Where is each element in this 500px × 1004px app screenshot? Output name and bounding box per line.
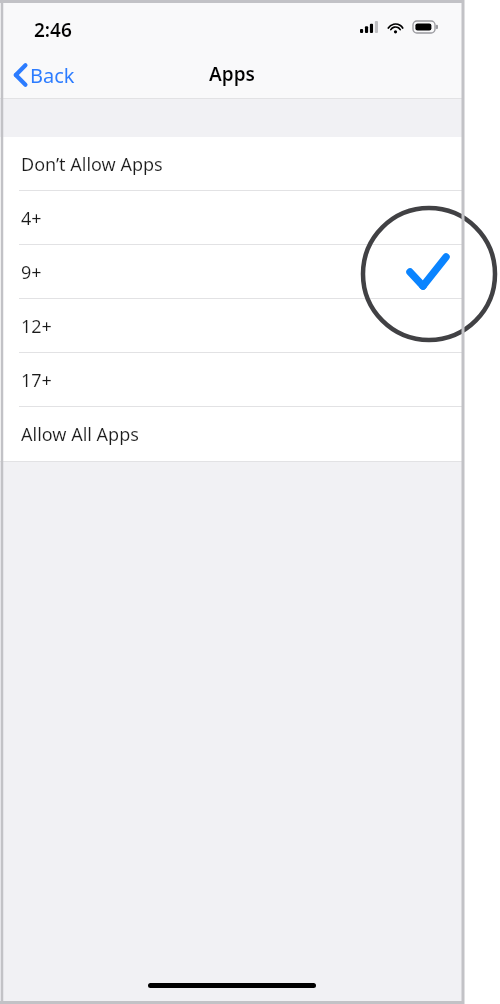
button[interactable]: Allow All Apps xyxy=(0,407,464,461)
button[interactable]: 17+ xyxy=(0,353,464,407)
other: Selected 9+ xyxy=(0,0,500,1004)
staticText: 12+ xyxy=(21,314,52,339)
button[interactable]: 9+ xyxy=(0,245,464,299)
staticText: 17+ xyxy=(21,368,52,393)
button[interactable]: Back xyxy=(8,57,81,93)
button[interactable]: 12+ xyxy=(0,299,464,353)
button[interactable]: Don’t Allow Apps xyxy=(0,137,464,191)
staticText: Apps xyxy=(209,61,255,87)
button[interactable]: 4+ xyxy=(0,191,464,245)
staticText: Allow All Apps xyxy=(21,422,139,447)
staticText: 2:46 xyxy=(34,17,72,43)
staticText: 4+ xyxy=(21,206,42,231)
staticText: Back xyxy=(30,62,75,89)
staticText: 9+ xyxy=(21,260,42,285)
staticText: Don’t Allow Apps xyxy=(21,152,163,177)
